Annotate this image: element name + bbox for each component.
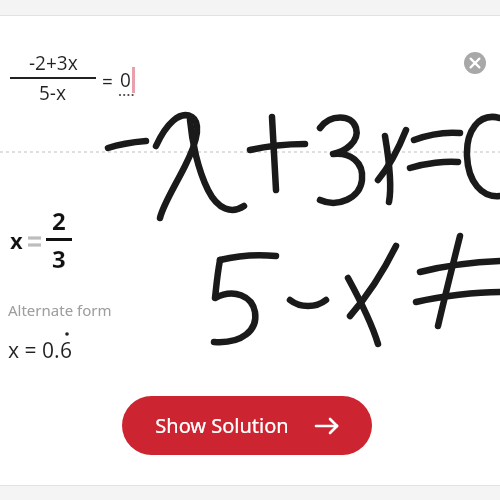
- staticText: 3: [52, 242, 66, 275]
- staticText: 6: [60, 336, 73, 365]
- button[interactable]: Show Solution: [122, 396, 372, 455]
- staticText: =: [102, 69, 118, 95]
- staticText: Alternate form: [8, 300, 112, 320]
- staticText: 0: [120, 67, 131, 93]
- staticText: 5-x: [39, 80, 67, 106]
- staticText: -2+3x: [29, 50, 78, 76]
- button[interactable]: Close: [461, 49, 489, 77]
- staticText: Show Solution: [155, 412, 289, 439]
- staticText: x = 0.: [8, 336, 60, 365]
- staticText: 2: [52, 204, 66, 237]
- staticText: x: [10, 225, 23, 255]
